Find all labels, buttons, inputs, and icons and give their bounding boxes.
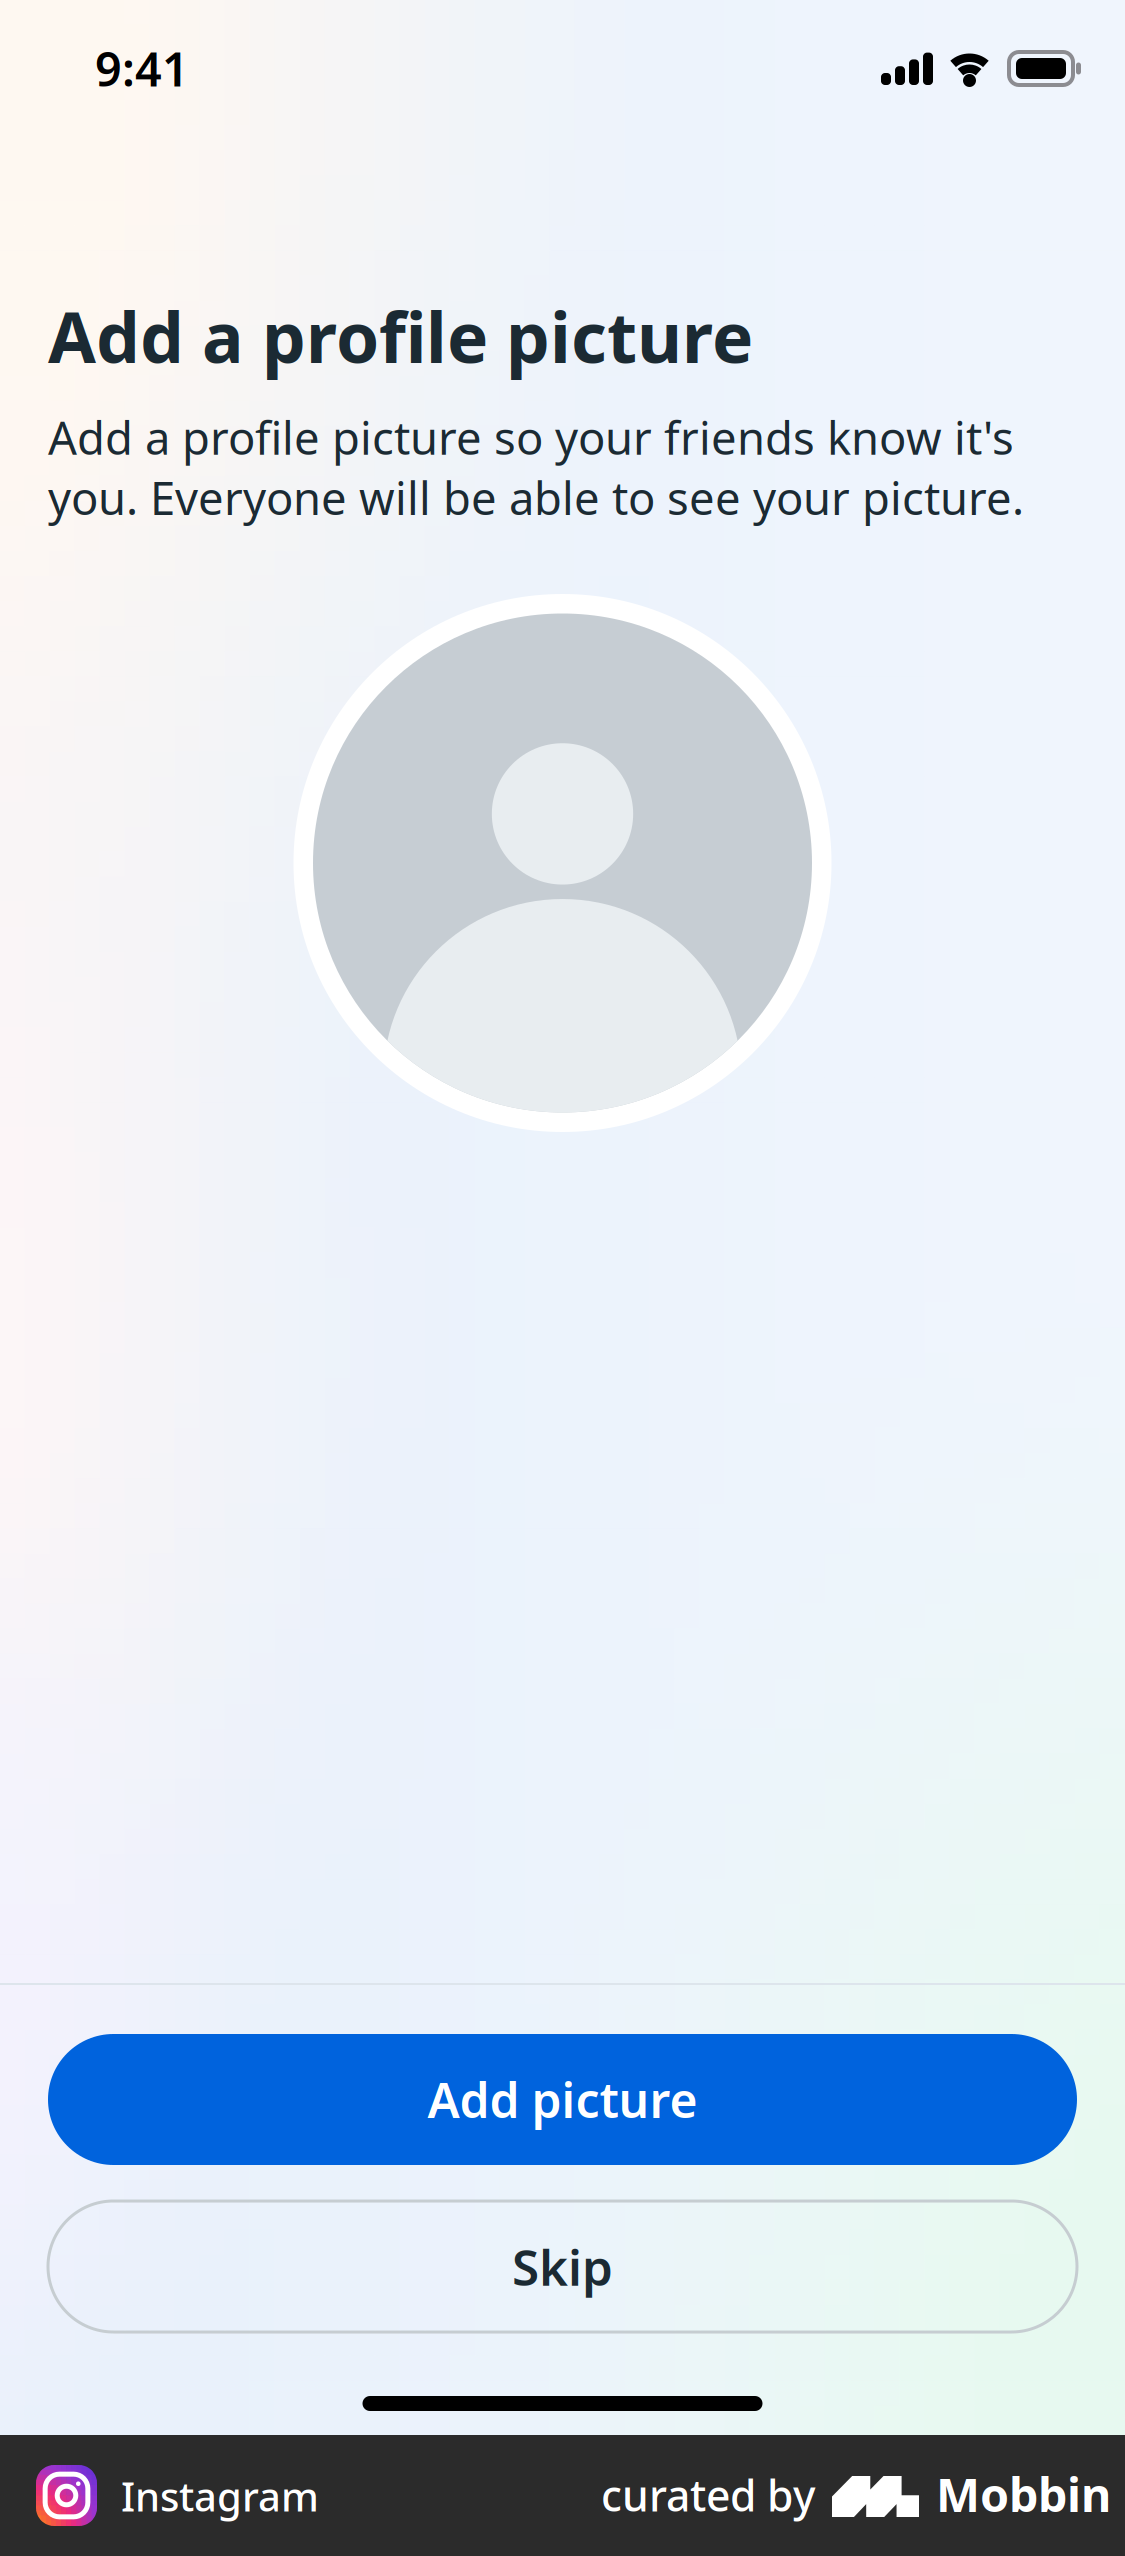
staticText: Mobbin [936,2463,1111,2525]
staticText: Add picture [427,2068,697,2131]
staticText: Add a profile picture [48,290,753,382]
staticText: Instagram [121,2469,319,2522]
staticText: 9:41 [95,37,189,99]
staticText: Add a profile picture so your friends kn… [48,407,1024,527]
staticText: Skip [512,2234,613,2299]
button[interactable]: Add picture [48,2034,1077,2165]
staticText: curated by [601,2467,816,2523]
button[interactable]: Skip [48,2201,1077,2332]
button[interactable]: Add profile photo [293,594,831,1132]
